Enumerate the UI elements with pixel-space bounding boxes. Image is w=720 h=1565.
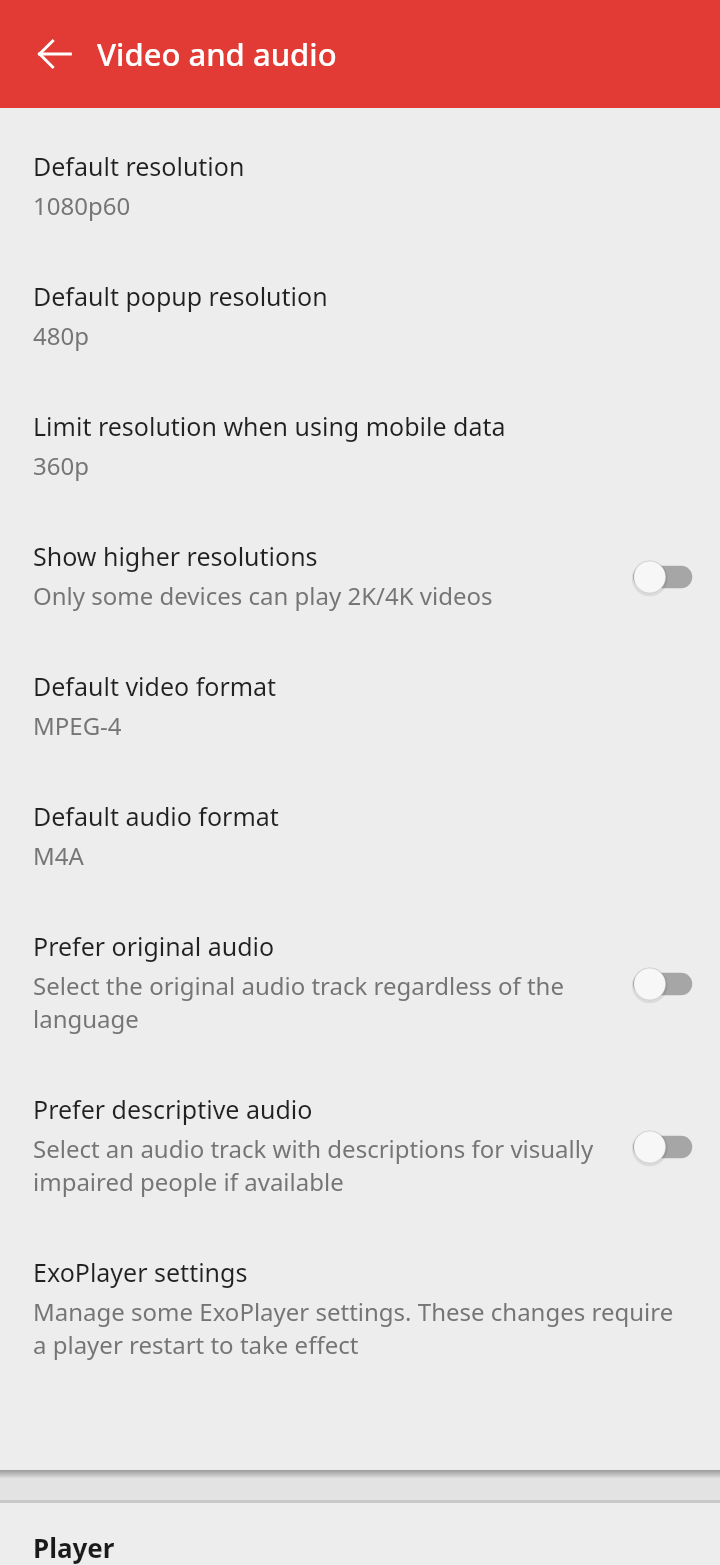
button[interactable]: Prefer original audio: [0, 902, 720, 1065]
button[interactable]: Toggle: [626, 557, 698, 597]
button[interactable]: Default video format: [0, 642, 720, 772]
staticText: Manage some ExoPlayer settings. These ch…: [33, 1295, 680, 1361]
staticText: Limit resolution when using mobile data: [33, 409, 506, 443]
button[interactable]: Back: [31, 30, 79, 78]
staticText: Default audio format: [33, 799, 279, 833]
button[interactable]: Prefer descriptive audio: [0, 1065, 720, 1228]
staticText: 480p: [33, 319, 89, 352]
staticText: ExoPlayer settings: [33, 1255, 248, 1289]
button[interactable]: ExoPlayer settings: [0, 1228, 720, 1391]
button[interactable]: Toggle: [626, 964, 698, 1004]
staticText: 1080p60: [33, 189, 131, 222]
staticText: M4A: [33, 839, 84, 872]
button[interactable]: Default resolution: [0, 122, 720, 252]
button[interactable]: Toggle: [626, 1127, 698, 1167]
button[interactable]: Default popup resolution: [0, 252, 720, 382]
button[interactable]: Show higher resolutions: [0, 512, 720, 642]
staticText: Select an audio track with descriptions …: [33, 1132, 618, 1198]
staticText: Player: [33, 1530, 115, 1565]
staticText: Default popup resolution: [33, 279, 328, 313]
staticText: Prefer descriptive audio: [33, 1092, 313, 1126]
button[interactable]: Player: [0, 1503, 720, 1565]
staticText: Prefer original audio: [33, 929, 275, 963]
staticText: Select the original audio track regardle…: [33, 969, 618, 1035]
button[interactable]: Limit resolution when using mobile data: [0, 382, 720, 512]
staticText: Only some devices can play 2K/4K videos: [33, 579, 493, 612]
staticText: Show higher resolutions: [33, 539, 318, 573]
staticText: Default video format: [33, 669, 277, 703]
button[interactable]: Default audio format: [0, 772, 720, 902]
staticText: Video and audio: [97, 33, 337, 75]
staticText: Default resolution: [33, 149, 245, 183]
staticText: MPEG-4: [33, 709, 122, 742]
staticText: 360p: [33, 449, 89, 482]
